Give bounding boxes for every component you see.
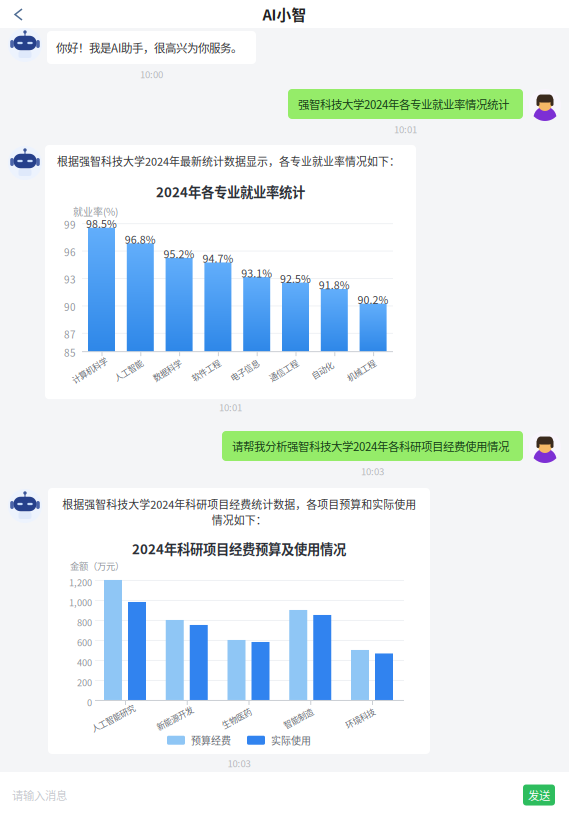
staticText: 发送 bbox=[528, 787, 550, 803]
staticText: 10:01 bbox=[219, 400, 242, 414]
staticText: 87 bbox=[64, 327, 76, 341]
staticText: 0 bbox=[87, 695, 92, 709]
staticText: 10:03 bbox=[361, 464, 384, 478]
button[interactable]: 发送 bbox=[523, 784, 555, 805]
staticText: 90.2% bbox=[358, 292, 389, 307]
staticText: 强智科技大学2024年各专业就业率情况统计 bbox=[298, 96, 509, 112]
staticText: 人工智能研究 bbox=[89, 712, 137, 724]
staticText: 99 bbox=[64, 217, 76, 232]
staticText: AI小智 bbox=[262, 3, 306, 25]
staticText: 98.5% bbox=[86, 216, 117, 231]
staticText: 400 bbox=[77, 655, 92, 669]
staticText: 你好！我是AI助手，很高兴为你服务。 bbox=[56, 39, 242, 56]
staticText: 电子信息 bbox=[229, 364, 261, 376]
staticText: 就业率(%) bbox=[73, 204, 118, 219]
staticText: 实际使用 bbox=[271, 733, 311, 747]
button[interactable]: Back bbox=[0, 0, 38, 28]
staticText: 10:00 bbox=[140, 67, 163, 81]
staticText: 根据强智科技大学2024年最新统计数据显示，各专业就业率情况如下： bbox=[57, 153, 400, 169]
staticText: 92.5% bbox=[280, 271, 311, 286]
staticText: 环境科技 bbox=[344, 712, 376, 724]
staticText: 新能源开发 bbox=[155, 712, 195, 724]
staticText: 生物医药 bbox=[220, 712, 252, 724]
staticText: 1,200 bbox=[69, 575, 92, 589]
staticText: 800 bbox=[77, 615, 92, 629]
staticText: 请输入消息 bbox=[12, 787, 67, 803]
staticText: 机械工程 bbox=[345, 364, 377, 376]
staticText: 200 bbox=[77, 675, 92, 689]
staticText: 96 bbox=[64, 245, 76, 259]
staticText: 数据科学 bbox=[151, 364, 183, 376]
staticText: 94.7% bbox=[202, 250, 233, 266]
staticText: 人工智能 bbox=[112, 364, 144, 376]
staticText: 智能制造 bbox=[282, 712, 314, 724]
staticText: 请帮我分析强智科技大学2024年各科研项目经费使用情况 bbox=[232, 438, 509, 454]
staticText: 通信工程 bbox=[267, 364, 299, 376]
staticText: 1,000 bbox=[69, 595, 92, 609]
staticText: 600 bbox=[77, 635, 92, 649]
staticText: 93 bbox=[64, 272, 76, 286]
staticText: 自动化 bbox=[310, 364, 334, 376]
staticText: 95.2% bbox=[164, 246, 195, 261]
staticText: 金额（万元） bbox=[70, 559, 124, 572]
staticText: 软件工程 bbox=[190, 364, 222, 376]
staticText: 根据强智科技大学2024年科研项目经费统计数据，各项目预算和实际使用情况如下： bbox=[62, 496, 416, 528]
staticText: 计算机科学 bbox=[69, 364, 109, 376]
staticText: 96.8% bbox=[125, 231, 156, 247]
staticText: 90 bbox=[64, 299, 76, 314]
staticText: 91.8% bbox=[319, 277, 350, 292]
staticText: 10:01 bbox=[394, 122, 417, 136]
staticText: 85 bbox=[64, 345, 76, 360]
staticText: 2024年科研项目经费预算及使用情况 bbox=[132, 539, 346, 558]
staticText: 93.1% bbox=[241, 265, 272, 280]
staticText: 2024年各专业就业率统计 bbox=[156, 182, 305, 201]
staticText: 预算经费 bbox=[191, 733, 231, 747]
staticText: 10:03 bbox=[227, 756, 250, 770]
